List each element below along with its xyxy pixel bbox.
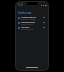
- staticText: Settings: [18, 10, 32, 14]
- staticText: 9:41: [18, 3, 24, 7]
- button[interactable]: Notifications: [16, 15, 48, 20]
- staticText: Notifications: [21, 15, 36, 18]
- button[interactable]: Privacy: [16, 25, 48, 30]
- button[interactable]: Settings: [16, 10, 48, 14]
- staticText: Appearance: [21, 20, 36, 23]
- button[interactable]: Appearance: [16, 20, 48, 25]
- staticText: Permissions: [21, 28, 34, 30]
- staticText: Alerts, sounds: [21, 18, 36, 20]
- staticText: Privacy: [21, 25, 30, 28]
- staticText: Dark theme: [21, 23, 34, 25]
